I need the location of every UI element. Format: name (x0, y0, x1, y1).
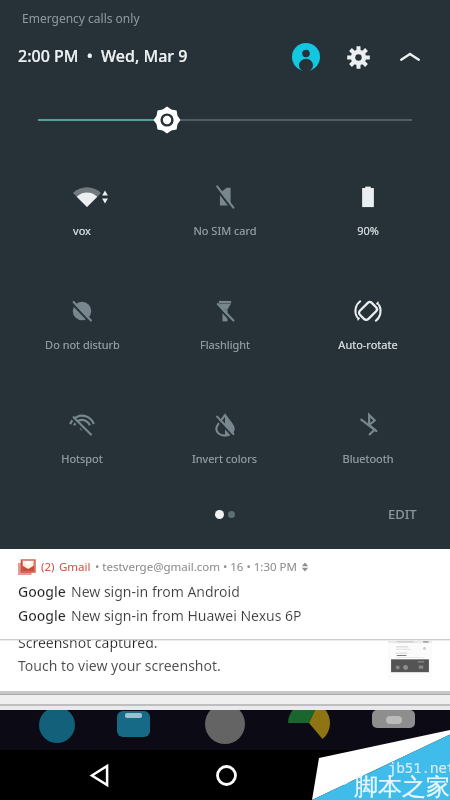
button[interactable]: 90% (296, 162, 439, 262)
staticText: Emergency calls only (22, 10, 140, 26)
button[interactable]: Screenshot captured. (0, 637, 450, 693)
button[interactable]: EDIT (388, 505, 417, 523)
staticText: No SIM card (193, 223, 257, 238)
button[interactable]: Flashlight (153, 276, 296, 376)
button[interactable]: Brightness (0, 100, 450, 140)
staticText: Google (18, 606, 66, 625)
staticText: Gmail (59, 559, 91, 575)
staticText: jb51.net (388, 758, 450, 777)
button[interactable]: Invert colors (153, 390, 296, 490)
staticText: (2) (41, 559, 55, 575)
button[interactable]: vox (11, 162, 153, 262)
button[interactable]: Home (200, 750, 252, 800)
staticText: Screenshot captured. (18, 633, 158, 652)
button[interactable]: No SIM card (153, 162, 296, 262)
staticText: EDIT (388, 505, 417, 523)
staticText: 90% (357, 223, 379, 238)
other: Watermark (0, 0, 450, 800)
button[interactable]: Auto-rotate (296, 276, 439, 376)
staticText: 2:00 PM • Wed, Mar 9 (18, 45, 188, 67)
button[interactable]: Collapse panel (392, 39, 428, 75)
button[interactable]: User account (288, 39, 324, 75)
staticText: Touch to view your screenshot. (18, 656, 221, 675)
button[interactable]: Recent apps (327, 750, 379, 800)
staticText: Google (18, 582, 66, 601)
button[interactable]: (2) (0, 549, 450, 637)
staticText: Hotspot (61, 451, 103, 466)
staticText: vox (73, 223, 91, 238)
button[interactable]: Settings (340, 39, 376, 75)
button[interactable]: Do not disturb (11, 276, 153, 376)
staticText: 脚本之家 (354, 772, 450, 800)
staticText: Do not disturb (45, 337, 120, 352)
button[interactable]: Bluetooth (296, 390, 439, 490)
staticText: Bluetooth (342, 451, 394, 466)
staticText: New sign-in from Android (71, 582, 240, 601)
button[interactable]: Back (73, 750, 125, 800)
staticText: Invert colors (192, 451, 257, 466)
button[interactable]: Hotspot (11, 390, 153, 490)
staticText: • testverge@gmail.com • 16 • 1:30 PM (95, 559, 297, 575)
staticText: New sign-in from Huawei Nexus 6P (71, 606, 302, 625)
staticText: Flashlight (200, 337, 250, 352)
staticText: Auto-rotate (338, 337, 398, 352)
